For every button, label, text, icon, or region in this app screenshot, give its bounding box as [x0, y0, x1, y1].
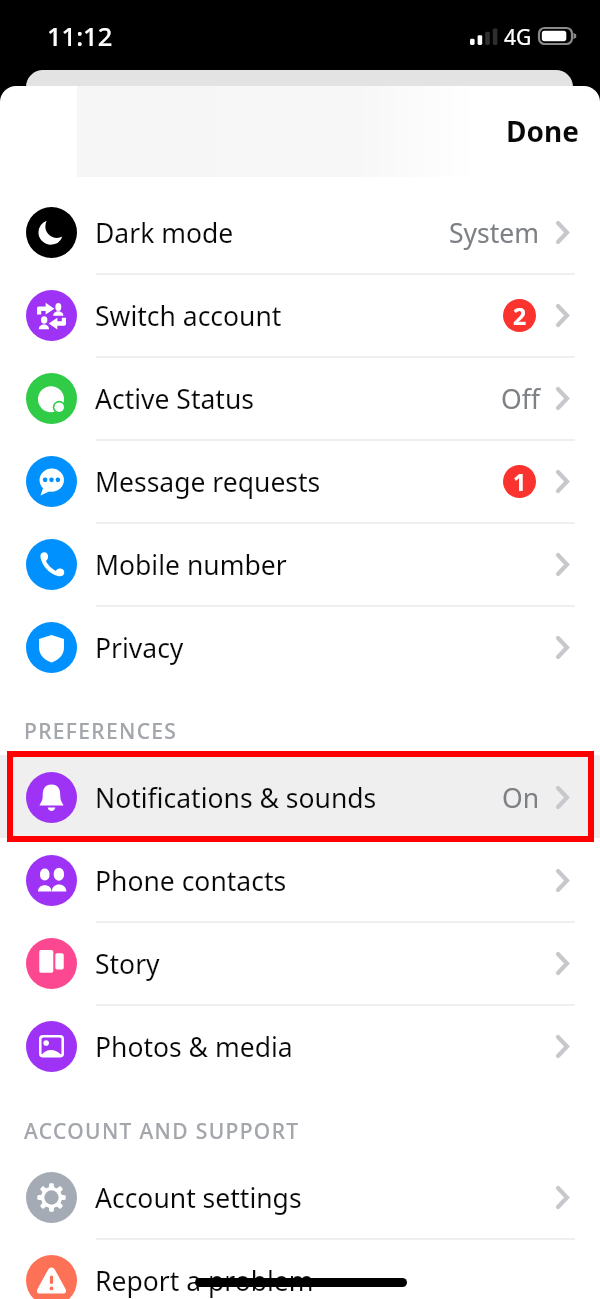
other: Open Story: [556, 952, 569, 975]
button[interactable]: Account settings: [0, 1156, 600, 1239]
staticText: Photos & media: [95, 1029, 293, 1065]
staticText: Switch account: [95, 298, 282, 334]
staticText: Dark mode: [95, 215, 234, 251]
staticText: 1: [513, 466, 527, 497]
staticText: PREFERENCES: [24, 717, 178, 746]
other: Open Notifications & sounds: [556, 786, 569, 809]
staticText: System: [449, 215, 540, 251]
button[interactable]: Notifications & sounds: [0, 756, 600, 839]
button[interactable]: Story: [0, 922, 600, 1005]
staticText: Phone contacts: [95, 863, 287, 899]
button[interactable]: Report a problem: [0, 1239, 600, 1299]
button[interactable]: Photos & media: [0, 1005, 600, 1088]
staticText: Off: [501, 381, 540, 417]
staticText: Message requests: [95, 464, 321, 500]
other: Open Photos & media: [556, 1035, 569, 1058]
other: Open Active Status: [556, 387, 569, 410]
other: Open Account settings: [556, 1186, 569, 1209]
button[interactable]: Dark mode: [0, 191, 600, 274]
staticText: Privacy: [95, 630, 184, 666]
staticText: Account settings: [95, 1180, 302, 1216]
other: Open Dark mode: [556, 221, 569, 244]
staticText: 11:12: [47, 19, 113, 54]
other: Open Message requests: [556, 470, 569, 493]
button[interactable]: Done: [483, 103, 600, 159]
staticText: Story: [95, 946, 160, 982]
staticText: Done: [506, 112, 579, 150]
staticText: 2: [513, 300, 527, 331]
button[interactable]: Phone contacts: [0, 839, 600, 922]
staticText: Mobile number: [95, 547, 287, 583]
other: Open Switch account: [556, 304, 569, 327]
other: Open Mobile number: [556, 553, 569, 576]
staticText: On: [502, 780, 540, 816]
button[interactable]: Mobile number: [0, 523, 600, 606]
staticText: ACCOUNT AND SUPPORT: [24, 1117, 300, 1146]
staticText: Notifications & sounds: [95, 780, 377, 816]
staticText: Active Status: [95, 381, 254, 417]
other: Open Privacy: [556, 636, 569, 659]
other: Open Phone contacts: [556, 869, 569, 892]
button[interactable]: Active Status: [0, 357, 600, 440]
staticText: Report a problem: [95, 1263, 314, 1299]
staticText: 4G: [504, 23, 532, 52]
button[interactable]: Privacy: [0, 606, 600, 689]
button[interactable]: Message requests: [0, 440, 600, 523]
button[interactable]: Switch account: [0, 274, 600, 357]
